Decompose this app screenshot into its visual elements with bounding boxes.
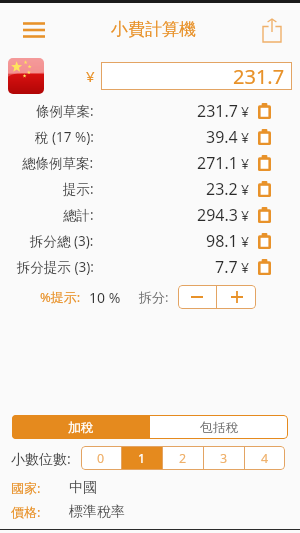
button[interactable]: 提示:	[0, 176, 300, 202]
staticText: 拆分總 (3):	[30, 232, 94, 250]
button[interactable]: Copy	[252, 255, 276, 279]
button[interactable]: Copy	[252, 177, 276, 201]
staticText: ¥	[241, 154, 250, 173]
button[interactable]: Country flag	[8, 58, 44, 94]
staticText: 國家:	[11, 479, 41, 497]
button[interactable]: 1	[122, 446, 162, 470]
staticText: 小費計算機	[111, 19, 196, 40]
staticText: 拆分:	[139, 288, 169, 306]
staticText: 231.7	[233, 63, 285, 90]
staticText: 2	[179, 450, 187, 467]
button[interactable]: 拆分總 (3):	[0, 228, 300, 254]
button[interactable]: 價格:	[0, 502, 300, 522]
staticText: 總計:	[63, 206, 94, 224]
button[interactable]: 總條例草案:	[0, 150, 300, 176]
button[interactable]: Menu	[12, 8, 56, 52]
staticText: 231.7	[197, 100, 238, 122]
staticText: 提示:	[63, 180, 94, 198]
button[interactable]: 4	[245, 446, 285, 470]
staticText: 23.2	[206, 178, 238, 200]
staticText: ¥	[241, 180, 250, 199]
staticText: 小數位數:	[11, 449, 71, 468]
staticText: ¥	[241, 102, 250, 121]
staticText: 標準稅率	[69, 503, 125, 521]
button[interactable]: Copy	[252, 99, 276, 123]
button[interactable]: 總計:	[0, 202, 300, 228]
staticText: 0	[97, 450, 105, 467]
staticText: 包括稅	[200, 419, 239, 435]
staticText: 1	[138, 450, 146, 467]
staticText: 條例草案:	[36, 102, 94, 120]
staticText: 7.7	[215, 256, 238, 278]
staticText: 98.1	[206, 230, 238, 252]
button[interactable]: Share	[250, 8, 294, 52]
staticText: 稅 (17 %):	[35, 128, 94, 146]
staticText: 10 %	[89, 288, 121, 307]
staticText: 中國	[69, 479, 97, 497]
staticText: 拆分提示 (3):	[17, 258, 94, 276]
button[interactable]: Copy	[252, 229, 276, 253]
button[interactable]: Copy	[252, 203, 276, 227]
button[interactable]: 包括稅	[150, 415, 288, 439]
staticText: 加稅	[68, 419, 94, 435]
staticText: 3	[220, 450, 228, 467]
button[interactable]: 231.7	[101, 62, 292, 90]
staticText: 總條例草案:	[22, 154, 94, 172]
button[interactable]: Copy	[252, 125, 276, 149]
staticText: ¥	[86, 66, 95, 86]
button[interactable]: Copy	[252, 151, 276, 175]
staticText: ¥	[241, 258, 250, 277]
staticText: 39.4	[206, 126, 238, 148]
staticText: 271.1	[197, 152, 238, 174]
button[interactable]: 稅 (17 %):	[0, 124, 300, 150]
staticText: 4	[261, 450, 269, 467]
button[interactable]: 國家:	[0, 478, 300, 498]
staticText: 294.3	[197, 204, 238, 226]
button[interactable]: 拆分提示 (3):	[0, 254, 300, 280]
button[interactable]: Increase split	[217, 285, 256, 309]
staticText: ¥	[241, 206, 250, 225]
staticText: 價格:	[11, 503, 41, 521]
staticText: %提示:	[40, 288, 81, 306]
button[interactable]: 3	[204, 446, 244, 470]
button[interactable]: 加稅	[12, 415, 150, 439]
button[interactable]: 條例草案:	[0, 98, 300, 124]
button[interactable]: 2	[163, 446, 203, 470]
staticText: ¥	[241, 232, 250, 251]
staticText: ¥	[241, 128, 250, 147]
button[interactable]: 0	[81, 446, 121, 470]
button[interactable]: Decrease split	[178, 285, 216, 309]
